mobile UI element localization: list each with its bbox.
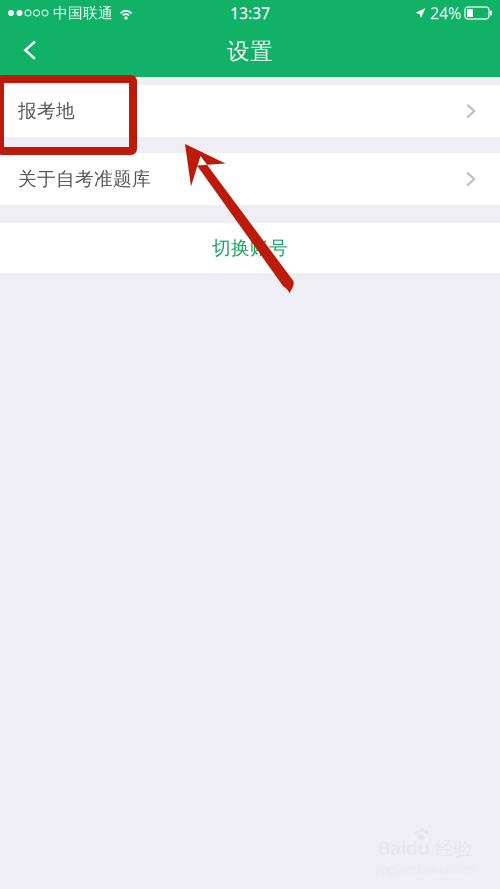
button[interactable]: 切换账号: [0, 223, 500, 273]
staticText: 13:37: [230, 2, 270, 24]
staticText: 切换账号: [212, 236, 288, 259]
staticText: 24%: [430, 2, 461, 24]
staticText: Baidu 经验: [378, 835, 473, 860]
button[interactable]: 报考地: [0, 85, 500, 137]
staticText: 中国联通: [53, 4, 113, 22]
staticText: 关于自考准题库: [18, 167, 151, 190]
staticText: 设置: [227, 38, 273, 65]
button[interactable]: Back: [0, 29, 54, 73]
button[interactable]: 关于自考准题库: [0, 153, 500, 205]
staticText: 报考地: [18, 99, 75, 122]
